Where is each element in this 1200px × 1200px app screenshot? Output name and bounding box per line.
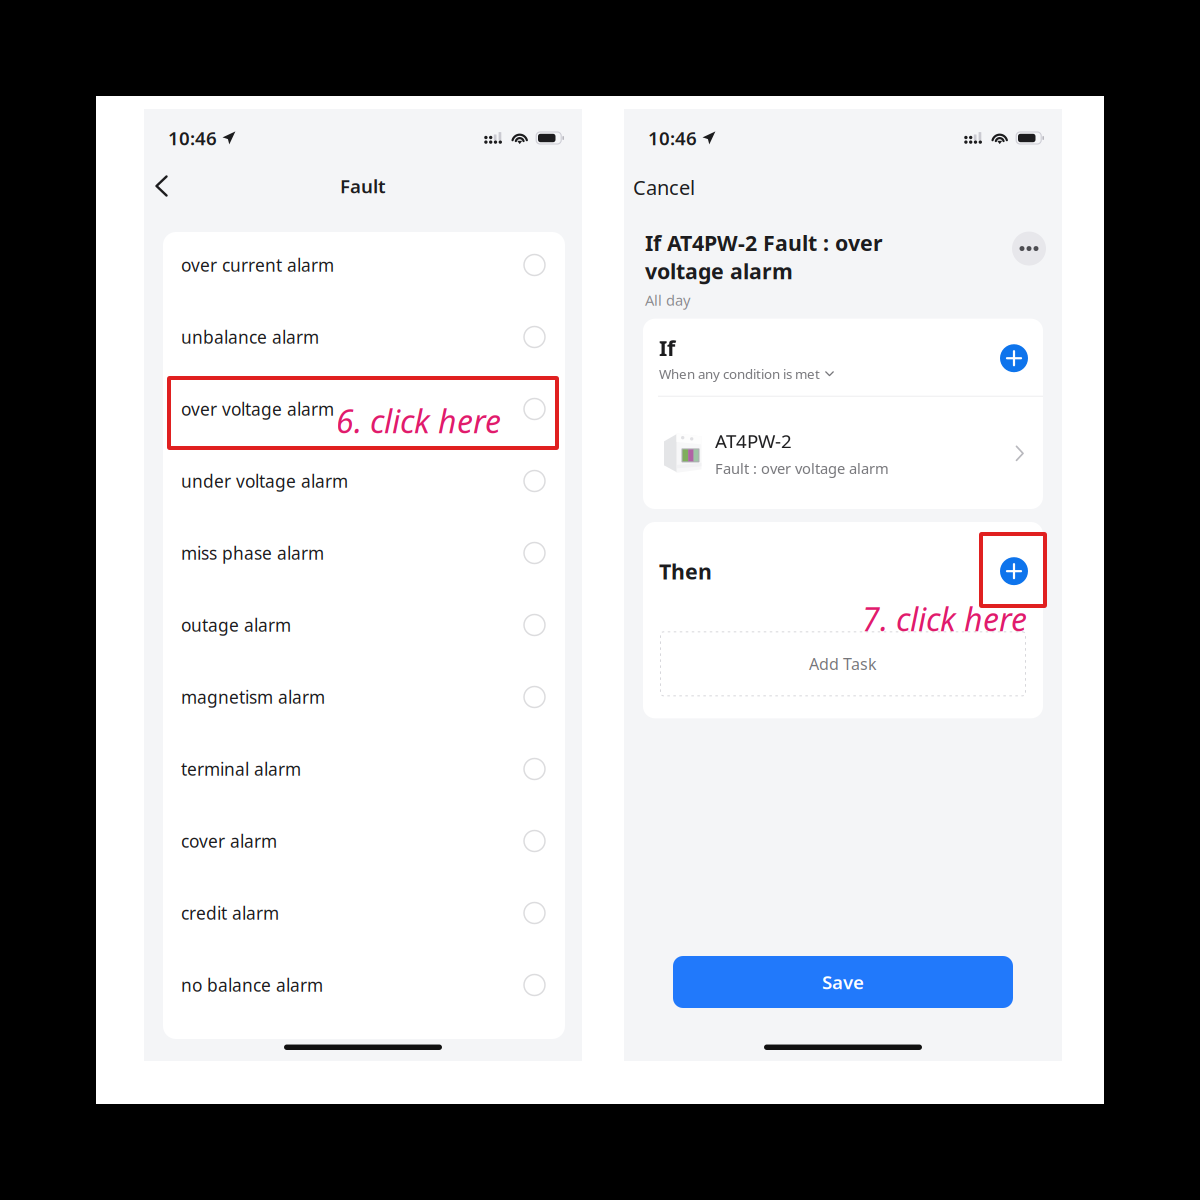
staticText: If AT4PW-2 Fault : over voltage alarm [645, 229, 883, 285]
button[interactable]: cover alarm [163, 805, 565, 877]
staticText: Add Task [809, 653, 877, 674]
button[interactable]: More options [1012, 232, 1046, 266]
staticText: miss phase alarm [181, 541, 324, 564]
staticText: 7. click here [862, 597, 1027, 641]
staticText: under voltage alarm [181, 469, 348, 492]
staticText: Fault : over voltage alarm [715, 458, 889, 478]
button[interactable]: no balance alarm [163, 949, 565, 1021]
staticText: Fault [340, 174, 386, 198]
staticText: 10:46 [648, 126, 697, 150]
staticText: 10:46 [168, 126, 217, 150]
staticText: Cancel [633, 174, 695, 201]
staticText: terminal alarm [181, 757, 301, 780]
button[interactable]: magnetism alarm [163, 661, 565, 733]
button[interactable]: terminal alarm [163, 733, 565, 805]
staticText: All day [645, 290, 690, 310]
staticText: over current alarm [181, 253, 334, 276]
button[interactable]: Add task [1000, 557, 1028, 585]
button[interactable]: outage alarm [163, 589, 565, 661]
staticText: Save [822, 970, 864, 994]
button[interactable]: Add condition [1000, 344, 1028, 372]
button[interactable]: over current alarm [163, 229, 565, 301]
button[interactable]: unbalance alarm [163, 301, 565, 373]
button[interactable]: Add Task [660, 631, 1026, 696]
button[interactable]: Back [145, 166, 178, 206]
staticText: cover alarm [181, 829, 277, 852]
button[interactable]: Save [673, 956, 1013, 1008]
staticText: Then [659, 557, 712, 585]
staticText: over voltage alarm [181, 397, 334, 420]
staticText: no balance alarm [181, 973, 323, 996]
staticText: If [659, 334, 675, 362]
staticText: credit alarm [181, 901, 279, 924]
button[interactable]: over voltage alarm [163, 373, 565, 445]
staticText: When any condition is met [659, 365, 820, 383]
staticText: unbalance alarm [181, 325, 319, 348]
staticText: 6. click here [336, 399, 501, 443]
button[interactable]: under voltage alarm [163, 445, 565, 517]
button[interactable]: credit alarm [163, 877, 565, 949]
button[interactable]: AT4PW-2 [643, 397, 1043, 509]
staticText: outage alarm [181, 613, 291, 636]
staticText: AT4PW-2 [715, 429, 792, 453]
button[interactable]: miss phase alarm [163, 517, 565, 589]
button[interactable]: Cancel [619, 165, 709, 210]
button[interactable]: When any condition is met [659, 365, 834, 383]
staticText: magnetism alarm [181, 685, 325, 708]
